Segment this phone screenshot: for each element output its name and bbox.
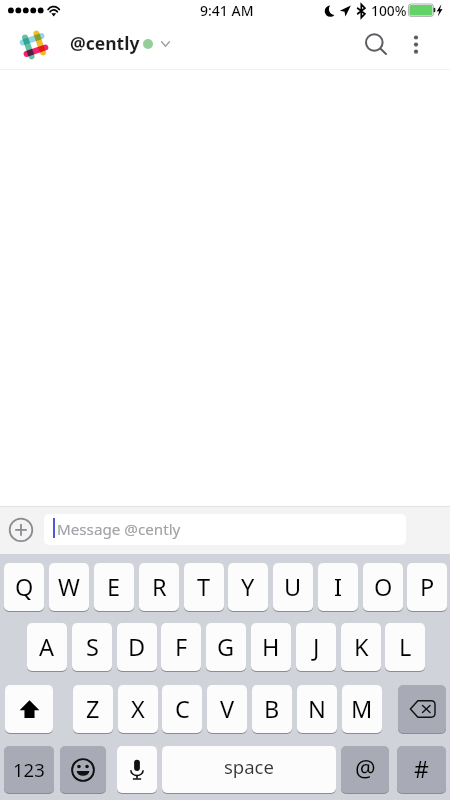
button[interactable]: Shift xyxy=(5,685,53,733)
button[interactable]: @ xyxy=(341,746,389,793)
button[interactable]: Add attachment xyxy=(8,517,34,543)
staticText: Q xyxy=(15,571,34,603)
staticText: I xyxy=(334,571,342,603)
staticText: @cently xyxy=(70,31,140,55)
button[interactable]: X xyxy=(118,685,158,733)
staticText: 123 xyxy=(13,757,45,782)
staticText: B xyxy=(264,693,280,725)
button[interactable]: Dictation xyxy=(117,746,157,793)
button[interactable]: Delete xyxy=(398,685,446,733)
button[interactable]: T xyxy=(184,563,224,611)
staticText: O xyxy=(374,571,393,603)
button[interactable]: space xyxy=(162,746,336,793)
button[interactable]: B xyxy=(252,685,292,733)
button[interactable]: R xyxy=(139,563,179,611)
staticText: 100% xyxy=(371,1,407,20)
button[interactable]: F xyxy=(161,623,201,671)
staticText: E xyxy=(107,571,121,603)
staticText: X xyxy=(131,693,145,725)
staticText: R xyxy=(152,571,167,603)
staticText: W xyxy=(58,571,80,603)
button[interactable]: Y xyxy=(228,563,268,611)
button[interactable]: E xyxy=(94,563,134,611)
staticText: H xyxy=(262,631,280,663)
staticText: P xyxy=(420,571,435,603)
staticText: J xyxy=(313,631,320,663)
button[interactable]: C xyxy=(162,685,202,733)
staticText: A xyxy=(39,631,55,663)
button[interactable]: Message @cently xyxy=(44,514,406,545)
button[interactable]: Search xyxy=(358,26,392,60)
button[interactable]: I xyxy=(318,563,358,611)
staticText: U xyxy=(284,571,302,603)
button[interactable]: A xyxy=(27,623,67,671)
button[interactable]: H xyxy=(251,623,291,671)
button[interactable]: More options xyxy=(402,26,430,54)
button[interactable]: U xyxy=(273,563,313,611)
staticText: L xyxy=(399,631,412,663)
staticText: Message @cently xyxy=(57,519,181,540)
button[interactable]: P xyxy=(407,563,447,611)
button[interactable]: W xyxy=(49,563,89,611)
staticText: 9:41 AM xyxy=(200,1,254,20)
staticText: K xyxy=(354,631,369,663)
button[interactable]: # xyxy=(397,746,446,793)
staticText: D xyxy=(128,631,146,663)
staticText: T xyxy=(197,571,211,603)
staticText: @ xyxy=(355,752,376,783)
staticText: M xyxy=(351,693,373,725)
staticText: # xyxy=(414,753,429,784)
button[interactable]: Q xyxy=(4,563,44,611)
staticText: F xyxy=(175,631,188,663)
staticText: Y xyxy=(241,571,255,603)
button[interactable]: Z xyxy=(73,685,113,733)
button[interactable]: O xyxy=(363,563,403,611)
staticText: C xyxy=(175,693,190,725)
staticText: space xyxy=(224,754,274,779)
button[interactable]: S xyxy=(72,623,112,671)
staticText: S xyxy=(86,631,99,663)
button[interactable]: N xyxy=(297,685,337,733)
staticText: N xyxy=(308,693,326,725)
staticText: G xyxy=(217,631,235,663)
button[interactable]: G xyxy=(206,623,246,671)
button[interactable]: Emoji xyxy=(60,746,106,793)
button[interactable]: @cently xyxy=(14,26,178,64)
button[interactable]: D xyxy=(117,623,157,671)
button[interactable]: 123 xyxy=(4,746,54,793)
button[interactable]: L xyxy=(385,623,425,671)
button[interactable]: K xyxy=(341,623,381,671)
button[interactable]: J xyxy=(296,623,336,671)
button[interactable]: M xyxy=(342,685,382,733)
staticText: V xyxy=(220,693,235,725)
staticText: Z xyxy=(86,693,100,725)
button[interactable]: V xyxy=(207,685,247,733)
